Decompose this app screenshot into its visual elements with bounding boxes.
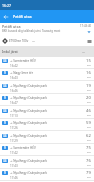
- staticText: perc: [87, 64, 91, 67]
- staticText: 9: [4, 146, 6, 150]
- staticText: → Nyulhegyi Csárpán park: [10, 109, 47, 113]
- staticText: 9: [4, 171, 6, 175]
- staticText: Indul járat: [2, 50, 18, 54]
- staticText: 46: [86, 108, 91, 114]
- staticText: → Nagy Imre tér: [10, 71, 33, 75]
- staticText: Petőfi utca: [13, 14, 32, 19]
- button[interactable]: Back: [0, 11, 11, 22]
- button[interactable]: 34: [0, 132, 94, 144]
- staticText: perc: [87, 176, 91, 179]
- button[interactable]: 9: [0, 119, 94, 131]
- staticText: BKK buszok alig találnak jutni. Tavaszig…: [2, 29, 61, 33]
- staticText: 16:47: [10, 101, 18, 105]
- staticText: 16: [86, 70, 91, 76]
- staticText: 9: [4, 71, 6, 75]
- staticText: 15: [86, 58, 91, 64]
- button[interactable]: 34: [0, 57, 94, 69]
- button[interactable]: ETVOhez 100v: [0, 35, 94, 46]
- staticText: 9: [4, 96, 6, 100]
- staticText: Petőfi utca: [2, 24, 21, 29]
- staticText: → Nyulhegyi Csárpán park: [10, 121, 47, 125]
- staticText: 16:43: [10, 76, 18, 80]
- staticText: perc: [87, 114, 91, 117]
- staticText: perc: [87, 151, 91, 154]
- staticText: 17:42: [10, 151, 18, 155]
- button[interactable]: 9: [0, 94, 94, 106]
- staticText: 9: [4, 121, 6, 125]
- button[interactable]: 34: [0, 82, 94, 94]
- staticText: 62: [86, 133, 91, 139]
- staticText: → Nyulhegyi Csárpán park: [10, 134, 47, 138]
- staticText: → Nyulhegyi Csárpán park: [10, 159, 47, 163]
- button[interactable]: 9: [0, 144, 94, 156]
- staticText: —: [32, 39, 36, 43]
- staticText: 17:29: [10, 139, 18, 143]
- button[interactable]: 9: [0, 169, 94, 181]
- staticText: 34: [3, 59, 7, 63]
- staticText: → Nyulhegyi Csárpán park: [10, 84, 47, 88]
- staticText: 16:46: [10, 89, 18, 93]
- staticText: —: [82, 50, 86, 54]
- staticText: 17:26: [10, 126, 18, 130]
- staticText: 34: [3, 109, 7, 113]
- staticText: 17:43: [10, 164, 18, 168]
- staticText: 76: [86, 158, 91, 164]
- staticText: 17:13: [10, 114, 18, 118]
- button[interactable]: Map: [86, 38, 92, 44]
- staticText: 17:46: [10, 176, 18, 180]
- button[interactable]: 9: [0, 69, 94, 81]
- staticText: 16:42: [10, 64, 18, 68]
- staticText: perc: [87, 101, 91, 104]
- staticText: 59: [86, 120, 91, 126]
- staticText: 79: [86, 170, 91, 176]
- staticText: 34: [3, 159, 7, 163]
- staticText: 34: [3, 84, 7, 88]
- staticText: 75: [86, 145, 91, 151]
- staticText: ETVOhez 100v: [9, 39, 29, 43]
- staticText: → Szentendre HÉV: [10, 59, 36, 63]
- staticText: perc: [87, 164, 91, 167]
- button[interactable]: 34: [0, 107, 94, 119]
- staticText: → Szentendre HÉV: [10, 146, 36, 150]
- staticText: perc: [87, 126, 91, 129]
- staticText: → Nyulhegyi Csárpán park: [10, 96, 47, 100]
- staticText: 19: [86, 83, 91, 89]
- staticText: perc: [87, 89, 91, 92]
- button[interactable]: 34: [0, 157, 94, 169]
- staticText: 34: [3, 134, 7, 138]
- staticText: perc: [87, 76, 91, 79]
- button[interactable]: Expand: [85, 28, 92, 35]
- staticText: perc: [87, 139, 91, 142]
- staticText: 17:43:40: [80, 24, 92, 28]
- staticText: 20: [86, 95, 91, 101]
- staticText: → Nyulhegyi Csárpán park: [10, 171, 47, 175]
- staticText: 16:27: [2, 3, 11, 8]
